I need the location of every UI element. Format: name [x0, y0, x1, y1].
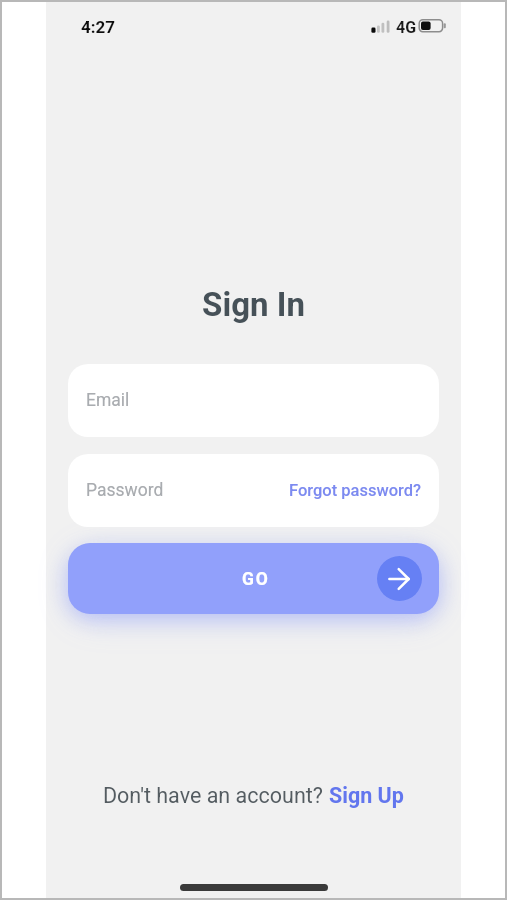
staticText: Sign Up	[329, 783, 404, 808]
button[interactable]: GO	[68, 543, 439, 614]
staticText: Forgot password?	[289, 481, 422, 500]
staticText: Sign In	[46, 285, 461, 324]
staticText: Email	[86, 390, 130, 411]
button[interactable]: Forgot password?	[289, 481, 422, 500]
button[interactable]: Sign Up	[329, 783, 404, 808]
staticText: GO	[242, 569, 270, 590]
button[interactable]: Email	[68, 364, 439, 437]
staticText: 4:27	[81, 17, 116, 37]
staticText: Don't have an account?	[103, 783, 329, 808]
staticText: 4G	[396, 18, 417, 37]
other: Go	[377, 556, 422, 601]
staticText: Password	[86, 480, 164, 501]
